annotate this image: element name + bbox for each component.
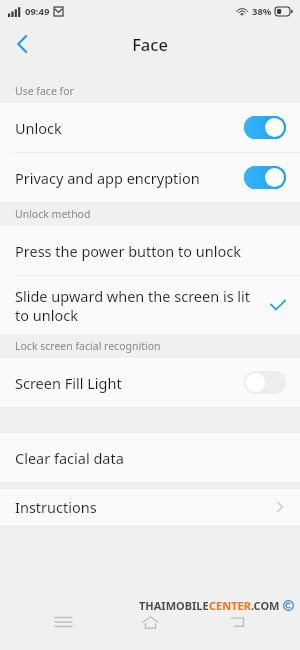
staticText: Slide upward when the screen is lit to u…: [15, 286, 270, 325]
button[interactable]: Privacy and app encryption: [0, 153, 300, 202]
button[interactable]: Slide upward when the screen is lit to u…: [0, 276, 300, 334]
staticText: Lock screen facial recognition: [15, 339, 161, 353]
button[interactable]: Back: [213, 598, 261, 646]
button[interactable]: Toggle off: [244, 371, 286, 394]
staticText: Use face for: [15, 84, 74, 98]
button[interactable]: Home: [126, 598, 174, 646]
button[interactable]: Toggle on: [244, 116, 286, 139]
staticText: Instructions: [15, 497, 276, 517]
staticText: THAIMOBILE: [139, 598, 209, 613]
button[interactable]: Screen Fill Light: [0, 358, 300, 407]
button[interactable]: Press the power button to unlock: [0, 226, 300, 275]
staticText: 09:49: [25, 5, 50, 18]
button[interactable]: Back: [0, 22, 44, 66]
button[interactable]: Clear facial data: [0, 433, 300, 482]
staticText: Unlock method: [15, 207, 91, 221]
staticText: CENTER: [209, 598, 251, 613]
button[interactable]: Instructions: [0, 489, 300, 525]
staticText: 38%: [252, 5, 272, 18]
staticText: .COM: [251, 598, 280, 613]
staticText: Screen Fill Light: [15, 373, 244, 393]
staticText: Press the power button to unlock: [15, 241, 241, 261]
button[interactable]: Unlock: [0, 103, 300, 152]
button[interactable]: Toggle on: [244, 166, 286, 189]
staticText: Privacy and app encryption: [15, 168, 244, 188]
staticText: Clear facial data: [15, 448, 124, 468]
staticText: Face: [132, 33, 168, 55]
staticText: Unlock: [15, 118, 244, 138]
button[interactable]: Recents: [39, 598, 87, 646]
